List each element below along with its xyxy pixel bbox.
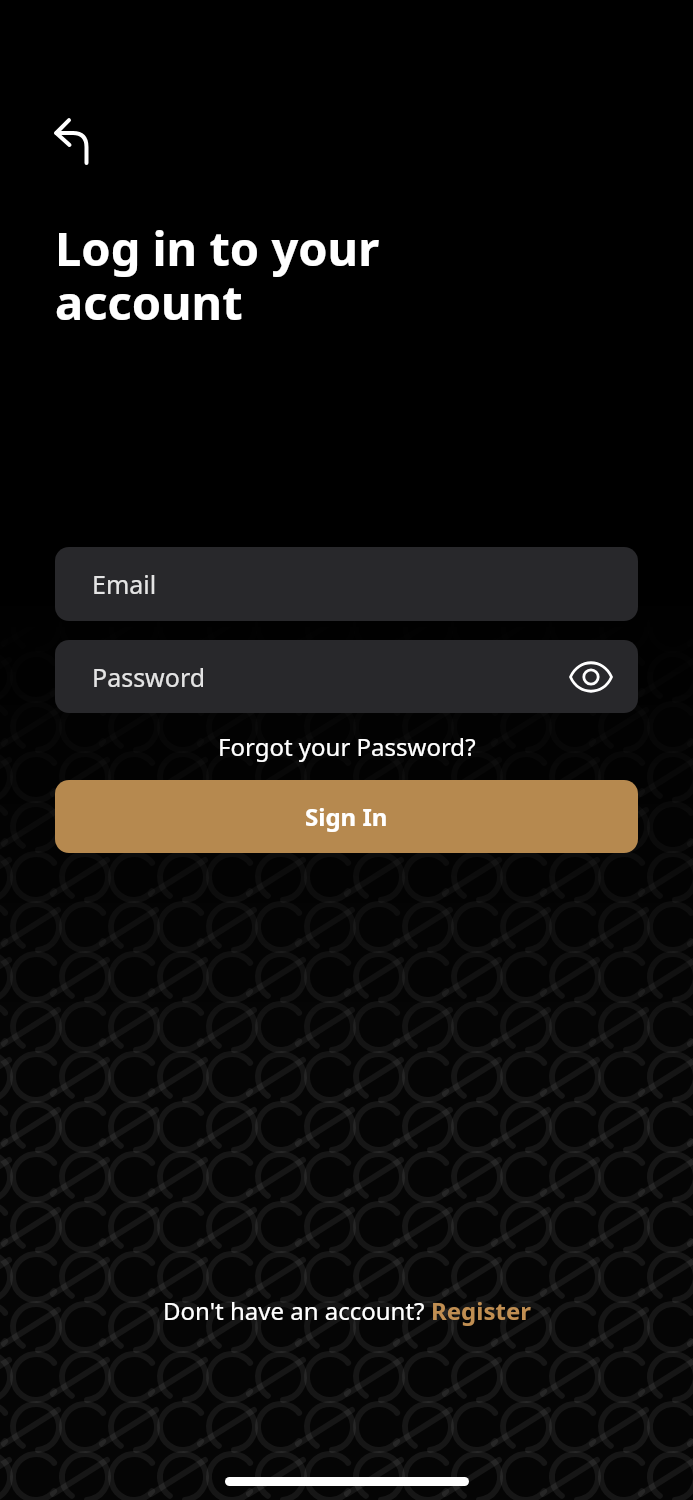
staticText: Email <box>92 567 157 601</box>
button[interactable]: Sign In <box>55 780 638 853</box>
staticText: Don't have an account? <box>163 1294 431 1327</box>
button[interactable]: Don't have an account? <box>163 1294 531 1327</box>
staticText: Register <box>431 1294 531 1327</box>
staticText: Log in to your account <box>55 216 380 333</box>
button[interactable]: Password <box>55 640 638 713</box>
staticText: Password <box>92 660 206 694</box>
button[interactable]: Forgot your Password? <box>218 730 476 763</box>
staticText: Sign In <box>305 800 388 833</box>
button[interactable]: Email <box>55 547 638 621</box>
button[interactable] <box>44 106 100 162</box>
